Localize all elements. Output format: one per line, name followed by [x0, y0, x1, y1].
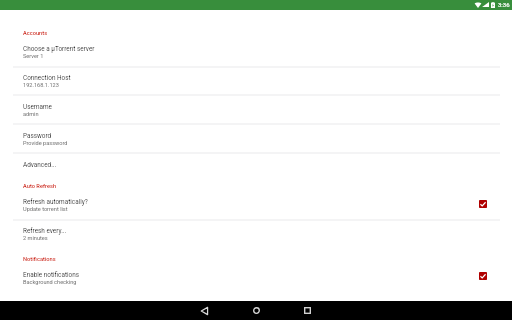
staticText: Connection Host [23, 74, 71, 82]
staticText: Refresh automatically? [23, 198, 88, 206]
staticText: Auto Refresh [23, 183, 57, 190]
other: Status bar [0, 0, 512, 10]
staticText: Update torrent list [23, 206, 68, 213]
staticText: admin [23, 111, 39, 118]
staticText: Password [23, 132, 52, 140]
staticText: Background checking [23, 279, 77, 286]
button[interactable]: Password [0, 125, 512, 153]
staticText: 2 minutes [23, 235, 48, 242]
button[interactable]: Refresh every... [0, 220, 512, 248]
staticText: 192.168.1.123 [23, 82, 59, 89]
staticText: Choose a µTorrent server [23, 45, 95, 53]
button[interactable]: Advanced... [0, 154, 512, 181]
button[interactable]: Choose a µTorrent server [0, 38, 512, 67]
staticText: Notifications [23, 256, 56, 263]
button[interactable]: Connection Host [0, 67, 512, 95]
staticText: Username [23, 103, 52, 111]
button[interactable]: Enable notifications [0, 264, 512, 292]
button[interactable]: Recent apps [282, 301, 333, 320]
button[interactable]: Refresh automatically? [0, 191, 512, 220]
staticText: Accounts [23, 30, 48, 37]
staticText: Enable notifications [23, 271, 80, 279]
staticText: Refresh every... [23, 227, 67, 235]
button[interactable]: Back [179, 301, 230, 320]
button[interactable]: Home [231, 301, 282, 320]
staticText: Advanced... [23, 161, 57, 169]
button[interactable]: Username [0, 96, 512, 123]
staticText: Server 1 [23, 53, 44, 60]
staticText: 3:36 [498, 1, 510, 8]
staticText: Provide password [23, 140, 68, 147]
